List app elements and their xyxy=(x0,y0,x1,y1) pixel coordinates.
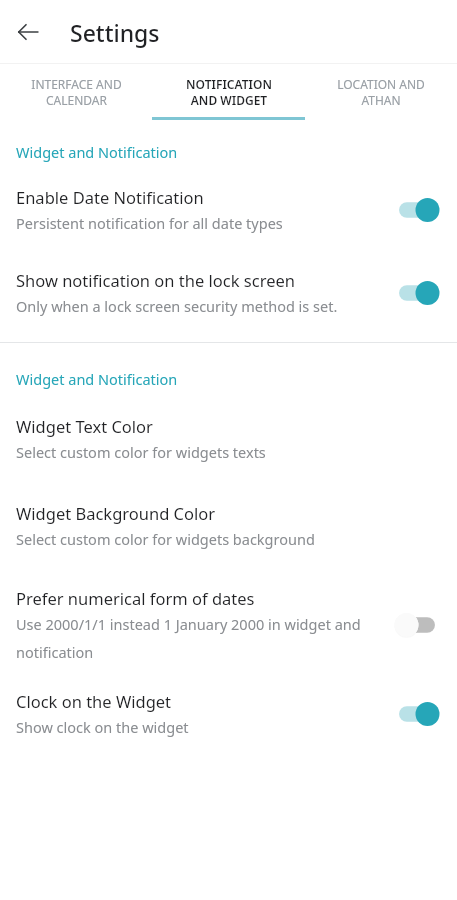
staticText: Widget and Notification xyxy=(16,142,178,162)
staticText: Select custom color for widgets backgrou… xyxy=(16,529,315,549)
staticText: Enable Date Notification xyxy=(16,186,204,208)
button[interactable]: LOCATION AND ATHAN xyxy=(305,64,457,120)
staticText: Use 2000/1/1 instead 1 January 2000 in w… xyxy=(16,614,379,662)
button[interactable]: Toggle on xyxy=(391,275,443,311)
button[interactable]: Widget Background Color xyxy=(0,502,457,549)
button[interactable]: Toggle on xyxy=(391,192,443,228)
button[interactable]: INTERFACE AND CALENDAR xyxy=(0,64,153,120)
button[interactable]: Show notification on the lock screen xyxy=(0,269,457,316)
button[interactable]: Clock on the Widget xyxy=(0,690,457,737)
staticText: Settings xyxy=(70,17,160,48)
staticText: Clock on the Widget xyxy=(16,690,172,712)
staticText: Show clock on the widget xyxy=(16,717,189,737)
staticText: Widget and Notification xyxy=(16,369,178,389)
staticText: Select custom color for widgets texts xyxy=(16,442,266,462)
button[interactable]: Prefer numerical form of dates xyxy=(0,587,457,662)
staticText: Widget Background Color xyxy=(16,502,216,524)
button[interactable]: Enable Date Notification xyxy=(0,186,457,233)
button[interactable]: NOTIFICATION AND WIDGET xyxy=(153,64,305,120)
staticText: Widget Text Color xyxy=(16,415,153,437)
staticText: LOCATION AND ATHAN xyxy=(337,76,425,109)
staticText: INTERFACE AND CALENDAR xyxy=(31,76,122,109)
button[interactable]: Back xyxy=(6,10,50,54)
staticText: Persistent notification for all date typ… xyxy=(16,213,283,233)
staticText: NOTIFICATION AND WIDGET xyxy=(186,76,272,109)
staticText: Only when a lock screen security method … xyxy=(16,296,338,316)
button[interactable]: Widget Text Color xyxy=(0,415,457,462)
staticText: Prefer numerical form of dates xyxy=(16,587,255,609)
button[interactable]: Toggle on xyxy=(391,696,443,732)
staticText: Show notification on the lock screen xyxy=(16,269,295,291)
button[interactable]: Toggle off xyxy=(391,607,443,643)
